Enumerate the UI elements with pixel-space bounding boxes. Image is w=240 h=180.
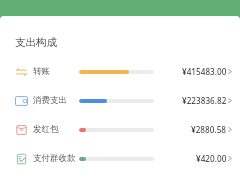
staticText: 消费支出 xyxy=(33,95,67,106)
staticText: ¥420.00 xyxy=(196,153,227,164)
staticText: 转账 xyxy=(33,66,50,77)
staticText: ¥223836.82 xyxy=(182,95,227,106)
staticText: 发红包 xyxy=(33,124,59,135)
staticText: 支出构成 xyxy=(15,36,57,49)
button[interactable]: 消费支出 xyxy=(0,86,240,115)
staticText: 支付群收款 xyxy=(33,153,76,164)
staticText: ¥415483.00 xyxy=(182,66,227,77)
staticText: ¥2880.58 xyxy=(191,124,227,135)
button[interactable]: 转账 xyxy=(0,57,240,86)
button[interactable]: 发红包 xyxy=(0,115,240,144)
button[interactable]: 支付群收款 xyxy=(0,144,240,173)
